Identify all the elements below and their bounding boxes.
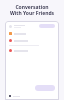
staticText: Conversation With Your Friends: [0, 4, 64, 17]
